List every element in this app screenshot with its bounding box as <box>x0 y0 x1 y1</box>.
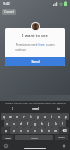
staticText: Send <box>31 59 40 64</box>
button[interactable]: d <box>17 120 24 127</box>
staticText: d <box>20 122 22 126</box>
staticText: i <box>51 115 52 119</box>
staticText: k <box>55 122 57 126</box>
button[interactable]: a <box>4 120 10 127</box>
staticText: n <box>48 129 50 133</box>
button[interactable]: Emoji <box>3 143 9 149</box>
staticText: h <box>41 122 43 126</box>
staticText: I want to see <box>22 33 48 39</box>
staticText: u <box>44 115 46 119</box>
staticText: x <box>20 129 22 133</box>
staticText: Cancel <box>4 10 14 14</box>
staticText: ?123 <box>5 136 11 139</box>
staticText: from <box>38 43 45 47</box>
button[interactable]: o <box>55 113 62 120</box>
button[interactable]: i <box>48 113 55 120</box>
staticText: t <box>30 115 32 119</box>
button[interactable]: Shift <box>1 127 10 134</box>
button[interactable]: v <box>31 127 38 134</box>
staticText: y <box>37 115 39 119</box>
staticText: s <box>13 122 15 126</box>
staticText: v <box>34 129 36 133</box>
staticText: continue <box>15 48 26 52</box>
button[interactable]: n <box>45 127 52 134</box>
staticText: I <box>12 107 13 111</box>
button[interactable]: I <box>0 105 24 112</box>
button[interactable]: k <box>52 120 59 127</box>
staticText: f <box>27 122 28 126</box>
staticText: z <box>13 129 15 133</box>
button[interactable]: z <box>10 127 17 134</box>
button[interactable]: l <box>59 120 66 127</box>
staticText: c <box>27 129 29 133</box>
button[interactable]: Cancel <box>2 9 16 15</box>
button[interactable]: to <box>47 105 70 112</box>
button[interactable]: e <box>13 113 20 120</box>
button[interactable]: c <box>24 127 31 134</box>
button[interactable]: Enter <box>55 135 68 140</box>
staticText: a <box>6 122 8 126</box>
staticText: q <box>3 115 5 119</box>
button[interactable]: ?123 <box>2 135 13 140</box>
staticText: p <box>65 115 67 119</box>
button[interactable]: Send <box>5 57 65 66</box>
staticText: e <box>16 115 18 119</box>
staticText: return <box>58 136 65 139</box>
button[interactable]: g <box>31 120 38 127</box>
button[interactable]: Backspace <box>59 127 69 134</box>
button[interactable]: s <box>10 120 17 127</box>
button[interactable]: u <box>41 113 48 120</box>
button[interactable]: y <box>34 113 41 120</box>
button[interactable]: m <box>52 127 59 134</box>
button[interactable]: f <box>24 120 31 127</box>
staticText: g <box>34 122 36 126</box>
button[interactable]: space <box>15 135 53 140</box>
button[interactable]: need <box>24 105 47 112</box>
staticText: to <box>57 107 60 111</box>
staticText: j <box>48 122 49 126</box>
staticText: question does not meet one requirement n… <box>5 102 66 105</box>
button[interactable]: Voice input <box>61 143 67 149</box>
staticText: w <box>9 115 12 119</box>
staticText: a users <box>45 43 55 47</box>
button[interactable]: j <box>45 120 52 127</box>
staticText: space <box>31 136 38 139</box>
button[interactable]: x <box>17 127 24 134</box>
other: Profile photo <box>31 22 40 31</box>
staticText: m <box>54 129 57 133</box>
button[interactable]: q <box>1 113 7 120</box>
button[interactable]: h <box>38 120 45 127</box>
button[interactable]: t <box>27 113 34 120</box>
button[interactable]: w <box>7 113 13 120</box>
button[interactable]: p <box>62 113 69 120</box>
staticText: Permissions need <box>15 43 38 47</box>
staticText: o <box>58 115 60 119</box>
staticText: l <box>62 122 63 126</box>
button[interactable]: r <box>20 113 27 120</box>
staticText: 9:42 <box>3 2 10 6</box>
button[interactable]: b <box>38 127 45 134</box>
staticText: b <box>41 129 43 133</box>
staticText: r <box>23 115 25 119</box>
staticText: need <box>32 107 39 111</box>
